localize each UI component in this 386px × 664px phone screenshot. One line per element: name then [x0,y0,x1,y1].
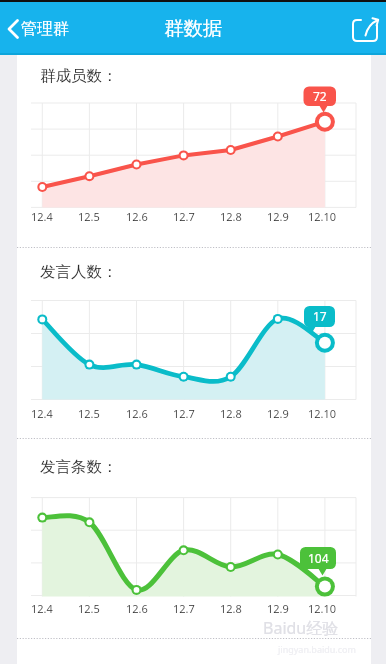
staticText: 12.7 [173,406,195,421]
staticText: 12.4 [31,406,53,421]
staticText: 12.8 [220,406,242,421]
staticText: 12.6 [126,601,148,616]
staticText: 12.5 [78,406,100,421]
staticText: 管理群 [21,19,69,39]
staticText: 12.5 [78,209,100,224]
staticText: 发言人数： [40,262,118,282]
staticText: 12.5 [78,601,100,616]
staticText: 12.10 [308,601,337,616]
staticText: 12.7 [173,601,195,616]
staticText: 群成员数： [40,66,118,86]
staticText: 12.8 [220,209,242,224]
staticText: 72 [313,88,327,104]
staticText: 12.6 [126,209,148,224]
staticText: 12.10 [308,406,337,421]
staticText: 12.10 [308,209,337,224]
staticText: 12.9 [267,601,289,616]
staticText: 12.8 [220,601,242,616]
staticText: 12.6 [126,406,148,421]
staticText: jingyan.baidu.com [278,643,356,655]
button[interactable]: 管理群 [0,2,69,55]
staticText: 12.4 [31,209,53,224]
staticText: 群数据 [164,16,223,41]
staticText: 发言条数： [40,457,118,477]
staticText: 17 [313,308,327,324]
button[interactable] [351,15,386,43]
staticText: 12.4 [31,601,53,616]
staticText: 12.7 [173,209,195,224]
staticText: 104 [308,550,329,566]
staticText: 12.9 [267,209,289,224]
staticText: 12.9 [267,406,289,421]
staticText: Baidu经验 [263,617,339,639]
